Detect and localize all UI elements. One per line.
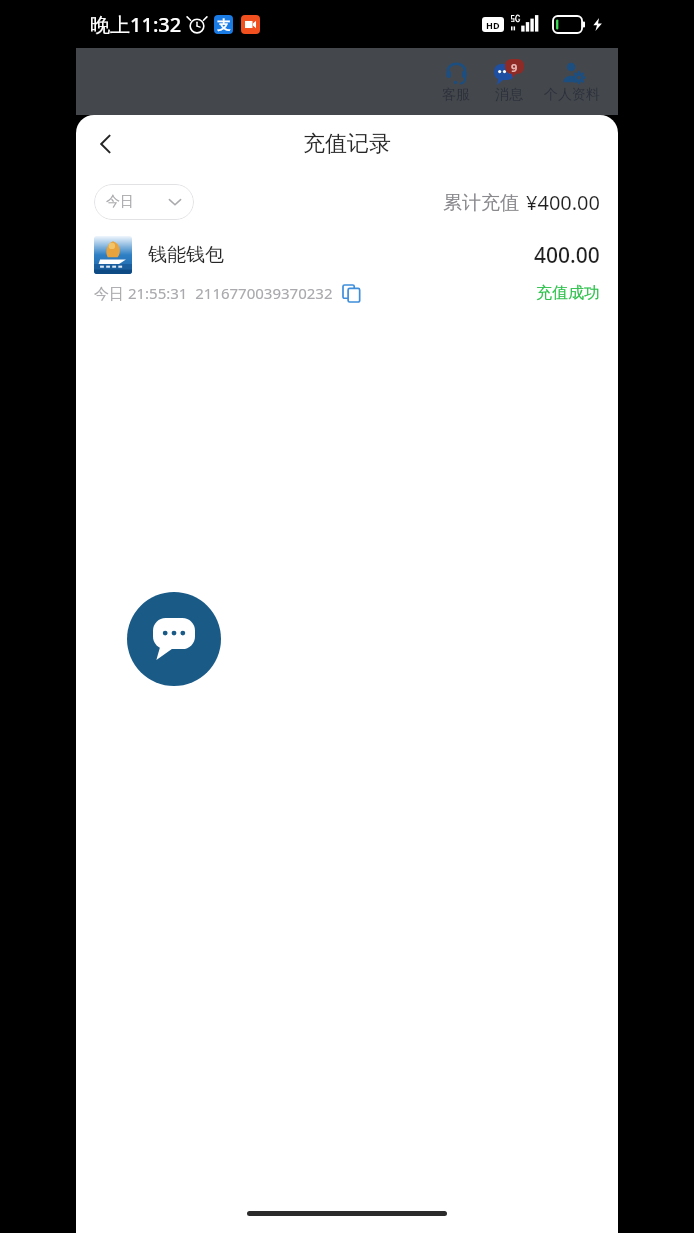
staticText: HD: [486, 19, 500, 31]
staticText: 充值记录: [303, 130, 391, 158]
button[interactable]: 在线客服: [127, 592, 221, 686]
staticText: 今日 21:55:31 2116770039370232: [94, 283, 333, 303]
staticText: 400.00: [534, 241, 600, 270]
button[interactable]: 今日: [94, 184, 194, 220]
staticText: 累计充值: [443, 191, 519, 215]
button[interactable]: 复制订单号: [340, 282, 362, 304]
staticText: 充值成功: [536, 283, 600, 303]
button[interactable]: 个人资料: [540, 57, 604, 106]
staticText: 消息: [495, 86, 523, 104]
button[interactable]: 消息: [490, 57, 528, 106]
staticText: 个人资料: [544, 86, 600, 104]
staticText: 9: [511, 60, 518, 75]
button[interactable]: 钱能钱包: [76, 232, 618, 314]
staticText: 今日: [106, 193, 134, 211]
staticText: 支: [217, 17, 230, 33]
staticText: 钱能钱包: [148, 243, 224, 267]
button[interactable]: 返回: [84, 122, 128, 166]
staticText: 晚上11:32: [90, 11, 182, 38]
button[interactable]: 客服: [438, 57, 474, 106]
staticText: ¥400.00: [526, 189, 600, 216]
staticText: 客服: [442, 86, 470, 104]
